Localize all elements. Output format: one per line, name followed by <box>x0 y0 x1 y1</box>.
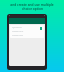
staticText: Option one <box>12 30 24 33</box>
staticText: choice option <box>22 7 43 11</box>
staticText: Option two <box>12 34 23 37</box>
staticText: Question <box>12 26 22 29</box>
button[interactable]: Question <box>10 25 44 38</box>
staticText: and create and use multiple <box>10 3 54 7</box>
